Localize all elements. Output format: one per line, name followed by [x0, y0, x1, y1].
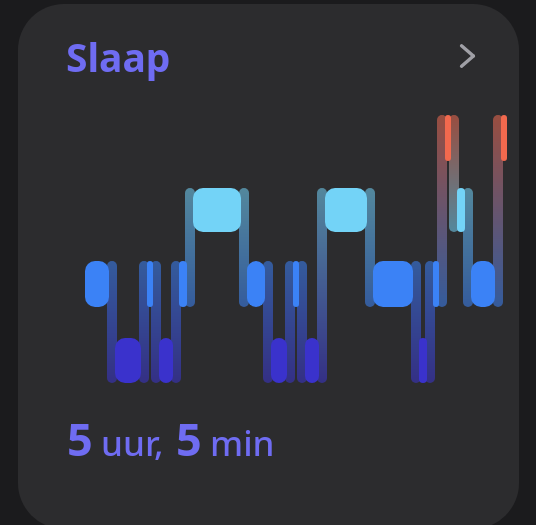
- staticText: uur,: [101, 419, 164, 467]
- staticText: min: [210, 419, 275, 467]
- button[interactable]: Slaap: [18, 4, 519, 525]
- staticText: Slaap: [66, 30, 171, 82]
- button[interactable]: Open sleep details: [445, 34, 489, 78]
- staticText: 5: [67, 408, 93, 469]
- staticText: 5: [176, 408, 202, 469]
